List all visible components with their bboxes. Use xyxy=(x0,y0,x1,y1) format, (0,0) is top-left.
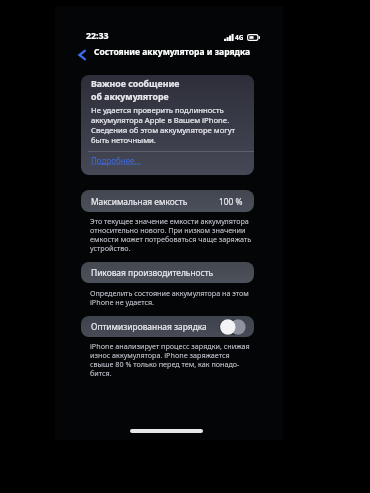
staticText: 22:33 xyxy=(86,30,109,42)
staticText: 4G xyxy=(235,33,244,41)
staticText: 100 % xyxy=(219,196,243,207)
button[interactable]: Подробнее... xyxy=(91,155,141,166)
staticText: iPhone анализирует процесс зарядки, сниж… xyxy=(90,341,253,378)
staticText: Пиковая производительность xyxy=(91,267,214,278)
staticText: Оптимизированная зарядка xyxy=(91,321,207,332)
button[interactable]: Оптимизированная зарядка xyxy=(219,319,246,335)
staticText: Состояние аккумулятора и зарядка xyxy=(94,46,251,58)
staticText: Это текущее значение емкости аккумулятор… xyxy=(90,216,253,253)
staticText: Не удается проверить подлинность аккумул… xyxy=(91,105,249,145)
button[interactable]: Назад xyxy=(73,46,91,64)
staticText: Определить состояние аккумулятора на это… xyxy=(90,288,253,307)
staticText: Максимальная емкость xyxy=(91,196,188,207)
staticText: Важное сообщение об аккумуляторе xyxy=(91,78,180,102)
